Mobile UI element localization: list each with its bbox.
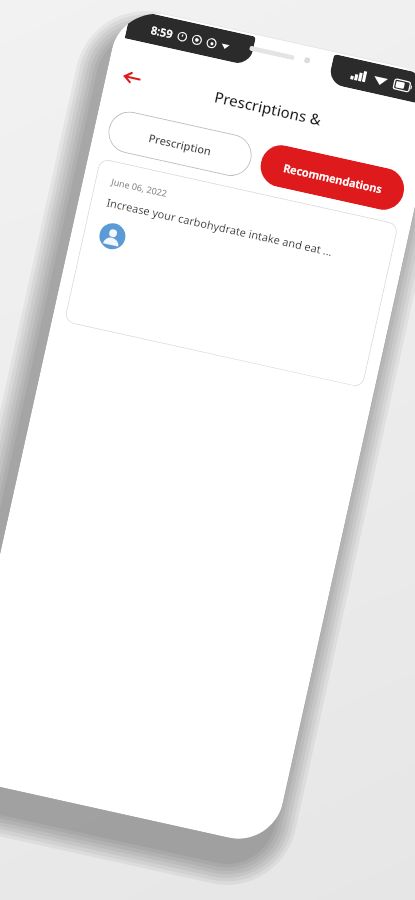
staticText: Recommendations (282, 160, 384, 196)
button[interactable]: June 06, 2022 (64, 158, 399, 388)
staticText: 8:59 (149, 22, 174, 41)
staticText: Prescription (147, 130, 213, 158)
staticText: June 06, 2022 (110, 175, 168, 199)
staticText: Prescriptions & Recommendations (148, 72, 388, 144)
staticText: Increase your carbohydrate intake and ea… (105, 194, 334, 259)
button[interactable]: Back (108, 54, 156, 102)
button[interactable]: Recommendations (257, 141, 408, 214)
button[interactable]: Prescription (104, 107, 256, 180)
